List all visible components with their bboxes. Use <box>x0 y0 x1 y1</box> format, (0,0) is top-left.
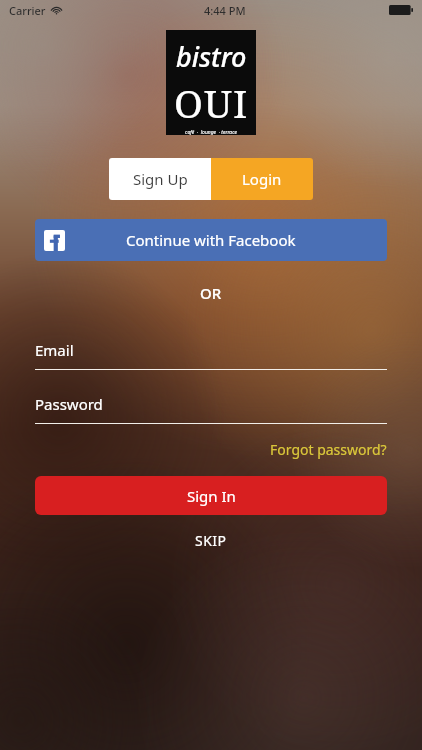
button[interactable]: Continue with Facebook <box>35 219 387 261</box>
staticText: Login <box>242 169 282 189</box>
staticText: Sign In <box>187 486 236 506</box>
button[interactable]: Password <box>35 394 387 424</box>
staticText: café · lounge · terrace <box>185 129 237 135</box>
staticText: Email <box>35 340 74 360</box>
button[interactable]: SKIP <box>189 525 233 556</box>
button[interactable]: Login <box>211 158 313 200</box>
staticText: Password <box>35 394 103 414</box>
staticText: Continue with Facebook <box>126 230 296 250</box>
staticText: OR <box>200 283 222 303</box>
button[interactable]: Forgot password? <box>270 440 387 459</box>
staticText: Carrier <box>9 3 46 18</box>
button[interactable]: Email <box>35 340 387 370</box>
button[interactable]: Sign Up <box>109 158 211 200</box>
staticText: bistro <box>176 38 247 75</box>
staticText: Sign Up <box>133 169 188 189</box>
staticText: 4:44 PM <box>204 3 246 18</box>
staticText: OUI <box>174 76 249 129</box>
button[interactable]: Sign In <box>35 476 387 515</box>
